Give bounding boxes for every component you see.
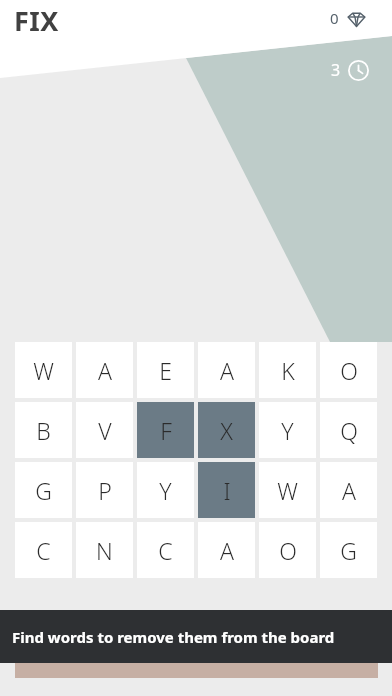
other: Timer — [348, 60, 369, 81]
button[interactable]: W — [259, 462, 316, 518]
button[interactable]: FIX — [12, 2, 61, 39]
staticText: B — [36, 415, 51, 446]
staticText: W — [277, 475, 298, 506]
staticText: O — [340, 355, 358, 386]
staticText: 0 — [330, 8, 339, 28]
staticText: Q — [340, 415, 358, 446]
staticText: W — [33, 355, 54, 386]
button[interactable]: C — [15, 522, 72, 578]
button[interactable]: Y — [259, 402, 316, 458]
button[interactable]: A — [320, 462, 377, 518]
button[interactable]: V — [76, 402, 133, 458]
staticText: P — [98, 475, 112, 506]
button[interactable]: 0 — [326, 4, 370, 32]
button[interactable]: I — [198, 462, 255, 518]
staticText: C — [36, 535, 51, 566]
button[interactable]: P — [76, 462, 133, 518]
staticText: Y — [159, 475, 172, 506]
button[interactable]: O — [259, 522, 316, 578]
button[interactable]: O — [320, 342, 377, 398]
staticText: C — [158, 535, 173, 566]
staticText: E — [159, 355, 172, 386]
button[interactable]: K — [259, 342, 316, 398]
staticText: V — [98, 415, 112, 446]
staticText: G — [340, 535, 357, 566]
staticText: FIX — [14, 2, 59, 39]
button[interactable]: A — [198, 342, 255, 398]
staticText: I — [223, 475, 231, 506]
staticText: K — [281, 355, 295, 386]
staticText: A — [342, 475, 356, 506]
staticText: F — [160, 415, 172, 446]
button[interactable]: A — [198, 522, 255, 578]
button[interactable]: Y — [137, 462, 194, 518]
staticText: Find words to remove them from the board — [12, 627, 335, 647]
button[interactable]: E — [137, 342, 194, 398]
button[interactable]: W — [15, 342, 72, 398]
button[interactable]: Find words to remove them from the board — [0, 610, 392, 663]
staticText: 3 — [331, 59, 341, 81]
button[interactable]: 3 — [328, 56, 372, 84]
button[interactable]: Q — [320, 402, 377, 458]
staticText: X — [220, 415, 233, 446]
button[interactable]: X — [198, 402, 255, 458]
button[interactable]: G — [320, 522, 377, 578]
staticText: O — [279, 535, 297, 566]
button[interactable]: G — [15, 462, 72, 518]
staticText: N — [96, 535, 113, 566]
other: Gems — [347, 9, 366, 28]
button[interactable]: C — [137, 522, 194, 578]
button[interactable]: A — [76, 342, 133, 398]
staticText: G — [35, 475, 52, 506]
button[interactable]: F — [137, 402, 194, 458]
staticText: Y — [281, 415, 294, 446]
staticText: A — [220, 355, 234, 386]
staticText: A — [220, 535, 234, 566]
staticText: A — [98, 355, 112, 386]
button[interactable]: N — [76, 522, 133, 578]
button[interactable]: B — [15, 402, 72, 458]
